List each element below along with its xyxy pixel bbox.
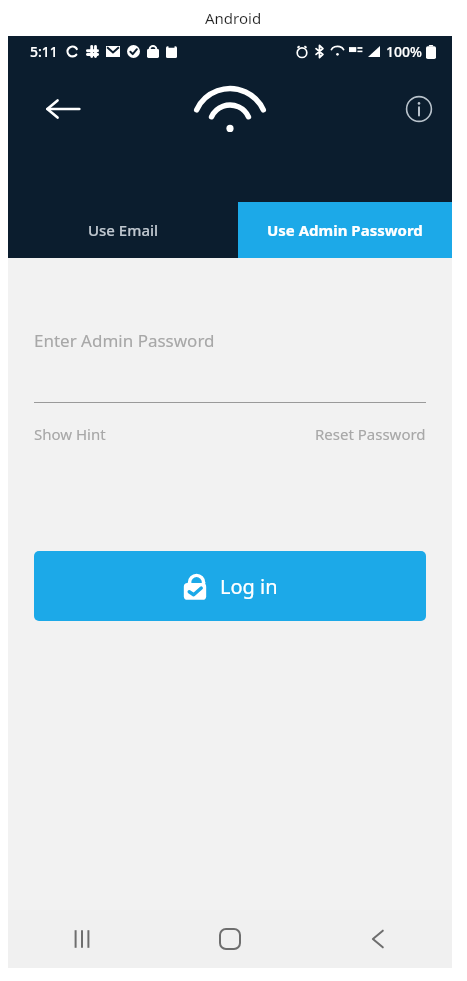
button[interactable]: Recent apps	[8, 910, 156, 968]
button[interactable]: Use Email	[8, 202, 238, 258]
button[interactable]: Home	[156, 910, 304, 968]
button[interactable]: Reset Password	[315, 420, 426, 448]
button[interactable]: Show Hint	[34, 420, 106, 448]
staticText: Log in	[220, 573, 278, 600]
staticText: Use Admin Password	[267, 220, 423, 240]
staticText: Use Email	[88, 220, 159, 240]
button[interactable]: Use Admin Password	[238, 202, 452, 258]
staticText: Enter Admin Password	[34, 329, 215, 352]
staticText: 100%	[386, 42, 422, 61]
staticText: 5:11	[30, 42, 58, 61]
staticText: Android	[205, 8, 262, 28]
button[interactable]: Enter Admin Password	[8, 312, 452, 368]
staticText: Show Hint	[34, 424, 106, 444]
button[interactable]: Back	[304, 910, 452, 968]
staticText: Reset Password	[315, 424, 426, 444]
button[interactable]: Log in	[34, 551, 426, 621]
button[interactable]: Info	[394, 84, 444, 134]
button[interactable]: Back	[34, 80, 92, 138]
